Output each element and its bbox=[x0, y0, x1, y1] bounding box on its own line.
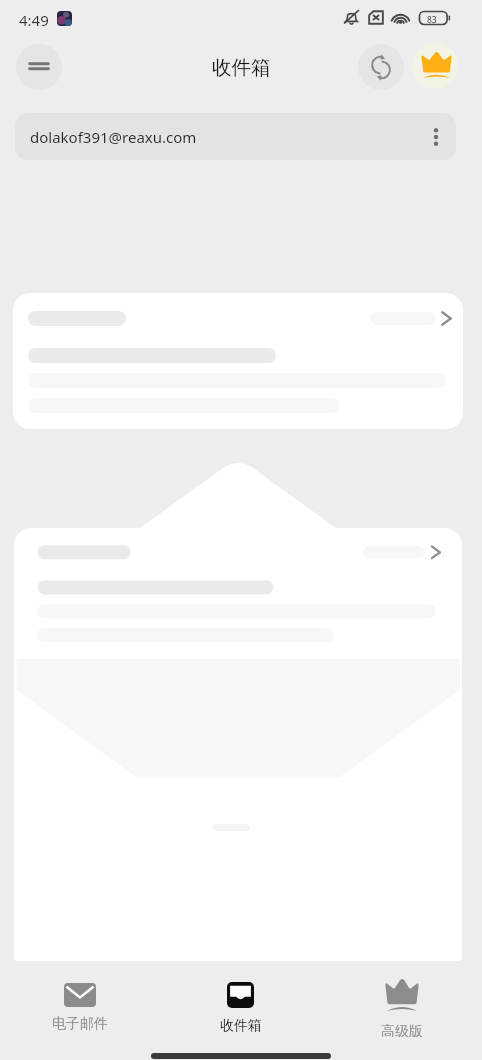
staticText: 收件箱 bbox=[212, 55, 271, 80]
button[interactable]: Menu bbox=[16, 44, 62, 90]
staticText: 电子邮件 bbox=[52, 1015, 108, 1033]
button[interactable] bbox=[13, 293, 463, 429]
staticText: 收件箱 bbox=[220, 1017, 262, 1035]
button[interactable]: 收件箱 bbox=[160, 971, 321, 1035]
button[interactable]: Premium bbox=[412, 43, 458, 89]
staticText: 4:49 bbox=[19, 10, 49, 30]
button[interactable]: dolakof391@reaxu.com bbox=[15, 113, 456, 160]
staticText: 83 bbox=[427, 14, 437, 26]
other: More options bbox=[434, 128, 438, 146]
button[interactable] bbox=[23, 528, 452, 657]
staticText: 高级版 bbox=[381, 1023, 423, 1037]
button[interactable]: Refresh bbox=[358, 44, 404, 90]
button[interactable]: 电子邮件 bbox=[0, 971, 160, 1033]
button[interactable]: 高级版 bbox=[321, 971, 482, 1037]
staticText: dolakof391@reaxu.com bbox=[30, 127, 197, 147]
